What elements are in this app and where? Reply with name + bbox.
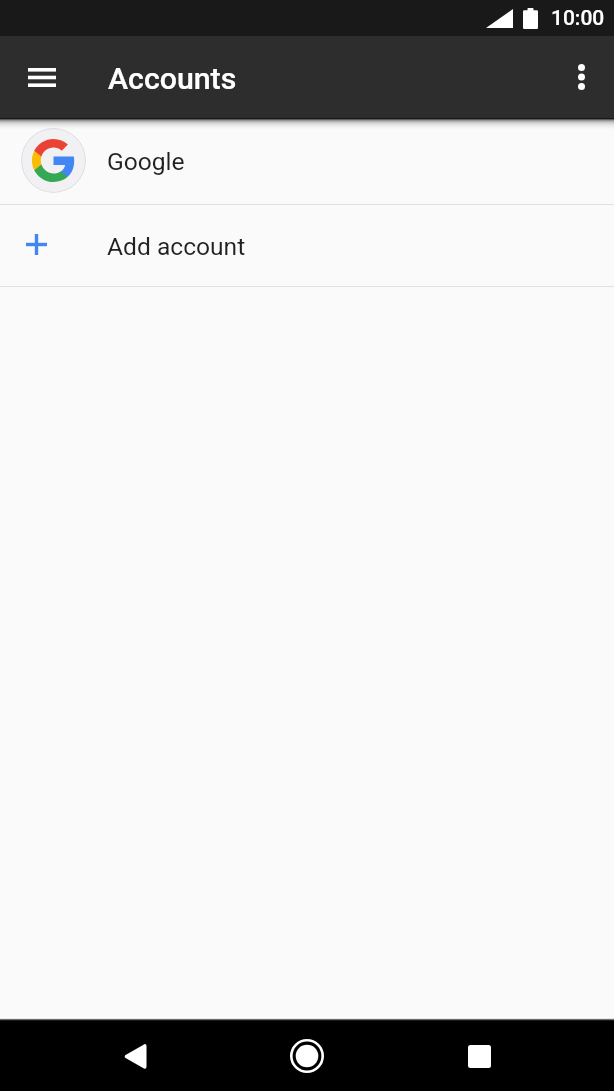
staticText: Accounts — [108, 61, 237, 97]
staticText: 10:00 — [551, 6, 605, 31]
button[interactable]: Home — [255, 1021, 359, 1091]
button[interactable]: Back — [83, 1021, 187, 1091]
staticText: Google — [107, 147, 185, 176]
button[interactable]: Recent apps — [427, 1021, 531, 1091]
button[interactable]: Google — [0, 118, 614, 204]
button[interactable]: Navigation menu — [9, 44, 75, 110]
button[interactable]: Add account — [0, 205, 614, 286]
button[interactable]: More options — [548, 44, 614, 110]
staticText: Add account — [107, 232, 246, 261]
